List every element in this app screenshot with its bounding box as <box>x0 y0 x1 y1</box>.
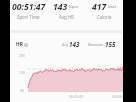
staticText: 143 <box>117 66 124 71</box>
button[interactable]: 00:51:47 <box>10 1 47 20</box>
staticText: Maximum <box>88 43 104 47</box>
staticText: 00:51:47 <box>12 1 46 13</box>
staticText: Avg <box>62 43 68 47</box>
staticText: Calorie <box>97 14 112 20</box>
staticText: 143 <box>53 1 68 13</box>
button[interactable]: 143 <box>47 1 85 20</box>
staticText: 200 <box>19 53 26 58</box>
staticText: Avg HR <box>59 14 74 20</box>
staticText: 143 <box>69 40 80 49</box>
staticText: 120 <box>19 70 26 75</box>
staticText: Sport Time <box>17 14 40 20</box>
button[interactable]: 417 <box>85 1 123 20</box>
button[interactable]: Heart rate info <box>24 43 28 47</box>
staticText: 155 <box>105 40 116 49</box>
staticText: kcal <box>108 3 116 9</box>
staticText: 00:25:00 <box>69 94 84 99</box>
staticText: 417 <box>92 1 107 13</box>
staticText: 00:50:00 <box>112 94 127 99</box>
staticText: HR <box>16 41 23 48</box>
staticText: bpm <box>69 3 79 9</box>
staticText: 40 <box>20 88 25 93</box>
